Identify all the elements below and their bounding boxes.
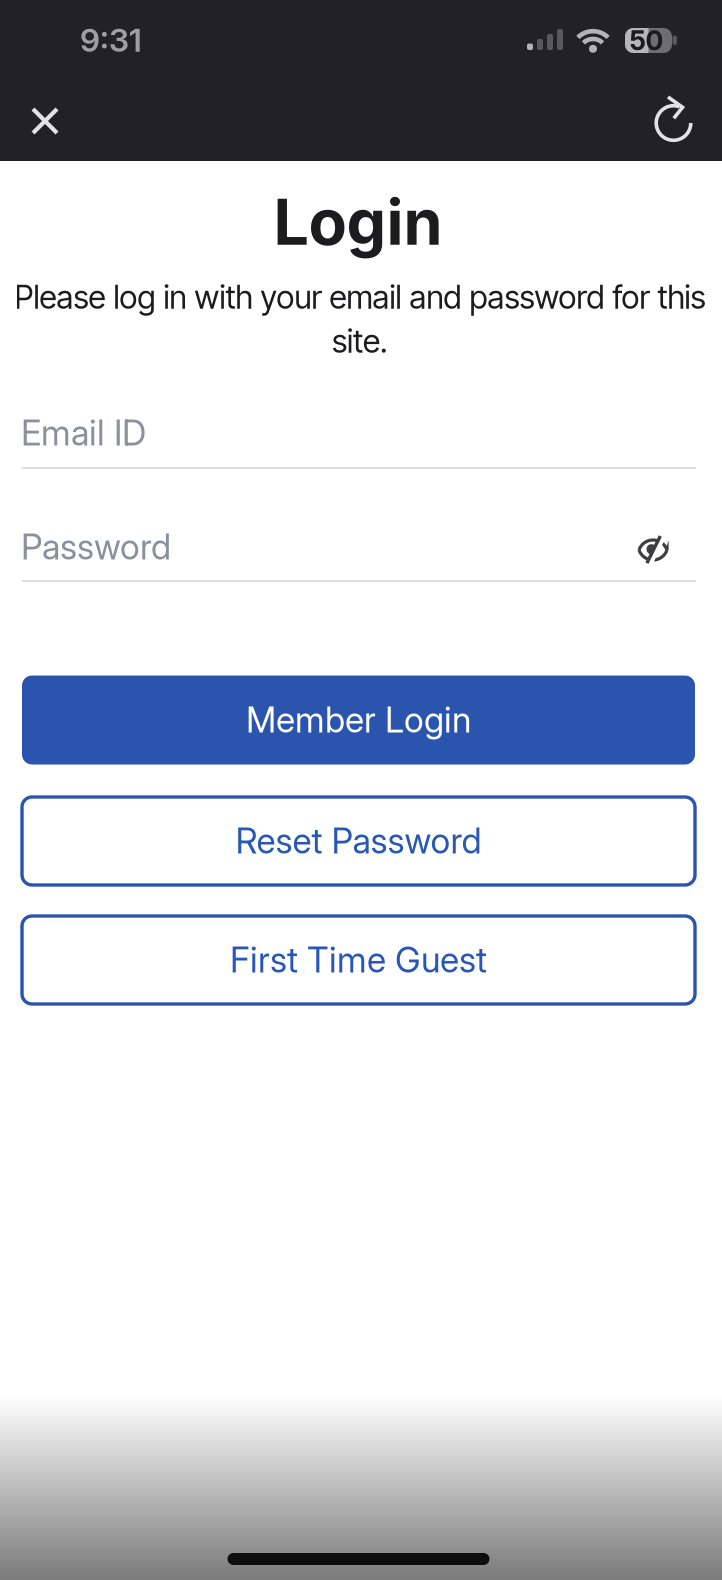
button[interactable]: First Time Guest (22, 916, 695, 1004)
staticText: Please log in with your email and passwo… (14, 278, 705, 316)
staticText: site. (332, 322, 388, 360)
staticText: Password (21, 527, 171, 567)
staticText: Member Login (246, 700, 471, 740)
button[interactable]: Reset Password (22, 797, 695, 885)
button[interactable]: Member Login (22, 675, 695, 764)
staticText: First Time Guest (230, 940, 487, 980)
button[interactable]: Password (20, 522, 698, 588)
staticText: Email ID (21, 413, 146, 453)
staticText: 50 (629, 25, 663, 56)
button[interactable]: Email ID (20, 408, 698, 474)
staticText: 9:31 (80, 21, 142, 59)
staticText: Reset Password (235, 821, 481, 861)
button[interactable]: Close (23, 99, 67, 143)
button[interactable]: Reload (645, 95, 701, 151)
button[interactable]: Show password (631, 529, 675, 571)
staticText: Login (273, 185, 442, 259)
